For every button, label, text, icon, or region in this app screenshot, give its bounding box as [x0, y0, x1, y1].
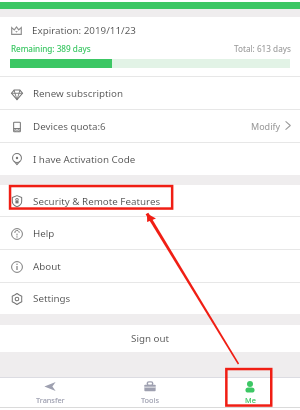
- button[interactable]: I have Activation Code: [0, 143, 300, 175]
- staticText: Sign out: [131, 332, 170, 345]
- staticText: Devices quota:6: [33, 120, 106, 133]
- button[interactable]: Transfer: [0, 377, 100, 407]
- staticText: Total: 613 days: [234, 43, 291, 54]
- staticText: Transfer: [36, 395, 65, 405]
- button[interactable]: Renew subscription: [0, 77, 300, 110]
- button[interactable]: About: [0, 250, 300, 283]
- staticText: Expiration: 2019/11/23: [32, 24, 136, 37]
- staticText: Renew subscription: [33, 87, 124, 100]
- button[interactable]: Devices quota:6: [0, 110, 300, 143]
- button[interactable]: Security & Remote Features: [0, 185, 300, 217]
- button[interactable]: Sign out: [0, 325, 300, 352]
- staticText: I have Activation Code: [33, 153, 136, 166]
- button[interactable]: Tools: [100, 377, 200, 407]
- staticText: Tools: [141, 395, 159, 405]
- staticText: Settings: [33, 292, 71, 305]
- button[interactable]: Settings: [0, 283, 300, 314]
- staticText: About: [33, 260, 61, 273]
- staticText: Modify: [251, 120, 281, 132]
- staticText: Remaining: 389 days: [11, 43, 91, 54]
- staticText: Security & Remote Features: [33, 195, 161, 208]
- button[interactable]: Me: [200, 377, 300, 407]
- button[interactable]: Help: [0, 217, 300, 250]
- staticText: Help: [33, 227, 55, 240]
- staticText: Me: [245, 395, 256, 405]
